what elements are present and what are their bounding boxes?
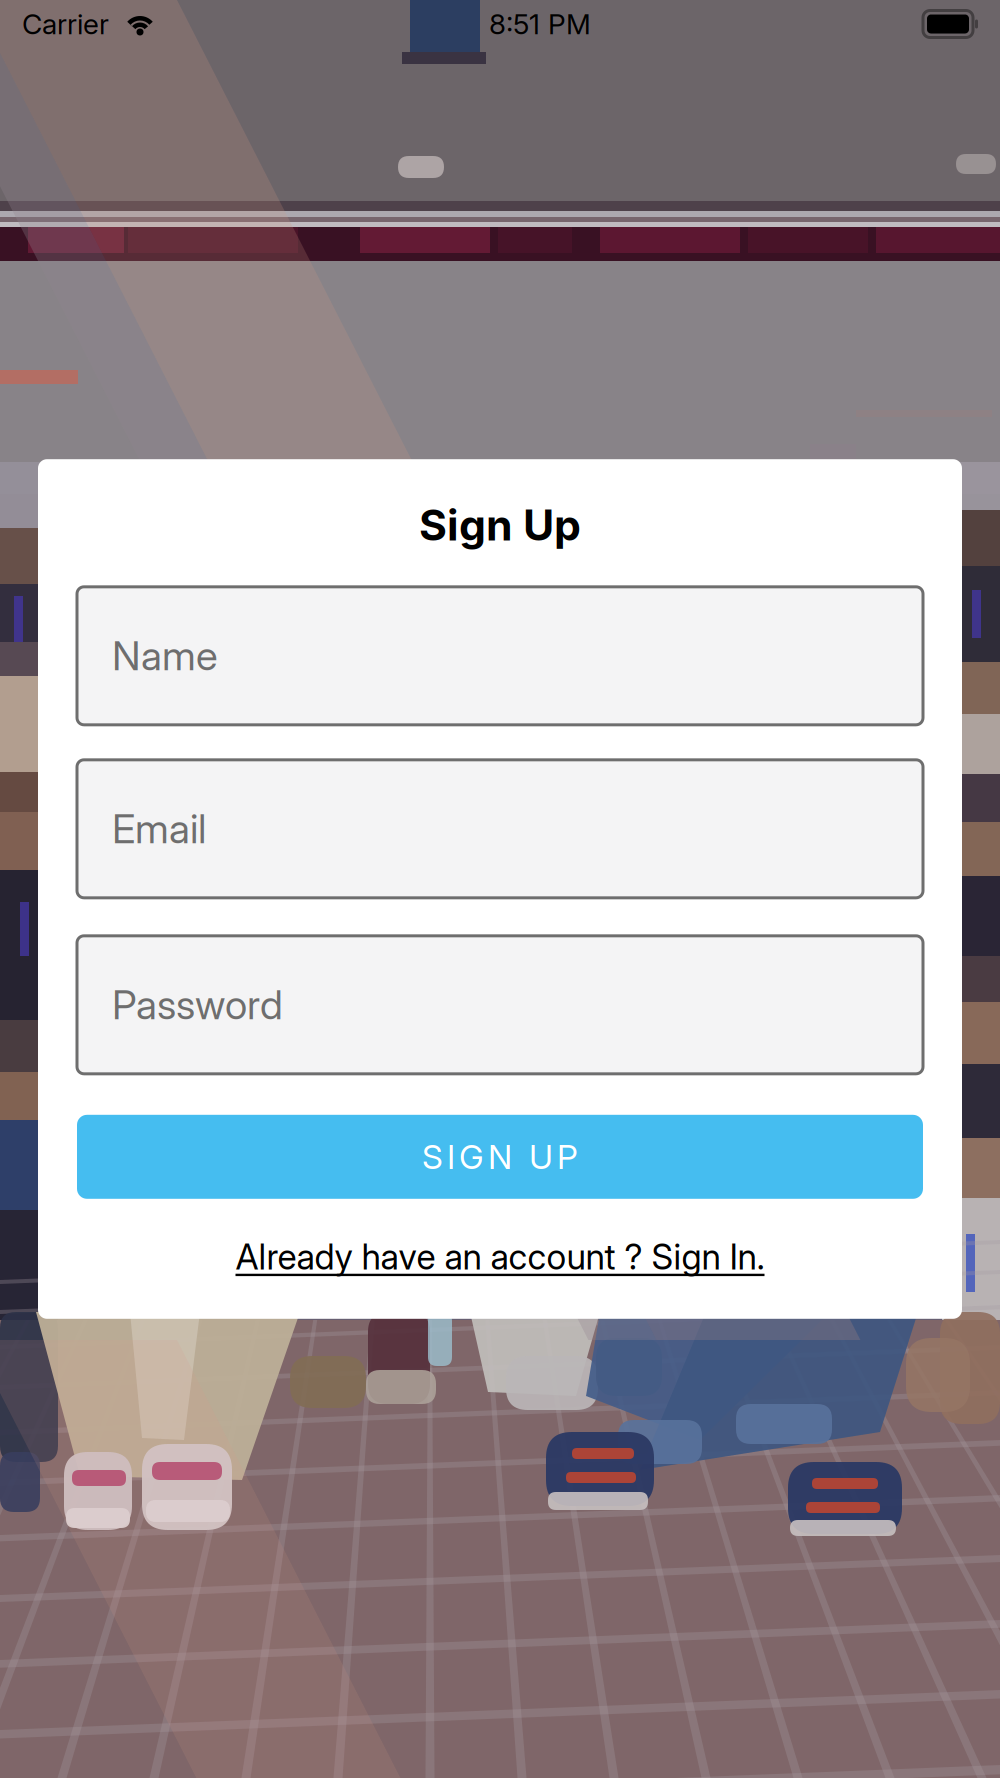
staticText: Carrier — [22, 7, 109, 41]
staticText: Email — [112, 805, 206, 853]
staticText: 8:51 PM — [489, 7, 591, 41]
button[interactable]: SIGN UP — [77, 1115, 923, 1199]
staticText: Name — [112, 632, 218, 680]
staticText: Sign Up — [419, 499, 581, 551]
staticText: SIGN UP — [422, 1137, 578, 1177]
staticText: Already have an account ? Sign In. — [235, 1236, 764, 1278]
staticText: Password — [112, 981, 283, 1029]
button[interactable]: Already have an account ? Sign In. — [77, 1230, 923, 1284]
